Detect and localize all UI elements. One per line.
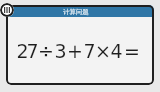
staticText: 2 [16, 40, 29, 62]
staticText: 计算问题 [63, 8, 89, 16]
staticText: 7 [83, 40, 96, 62]
button[interactable]: 计算问题 [6, 5, 154, 17]
staticText: 3 [54, 40, 67, 62]
staticText: ÷ [38, 40, 54, 62]
staticText: 4 [110, 40, 123, 62]
staticText: 7 [26, 40, 39, 62]
staticText: × [95, 40, 111, 62]
staticText: = [124, 40, 140, 62]
staticText: + [67, 40, 83, 62]
button[interactable]: App icon [0, 3, 14, 17]
